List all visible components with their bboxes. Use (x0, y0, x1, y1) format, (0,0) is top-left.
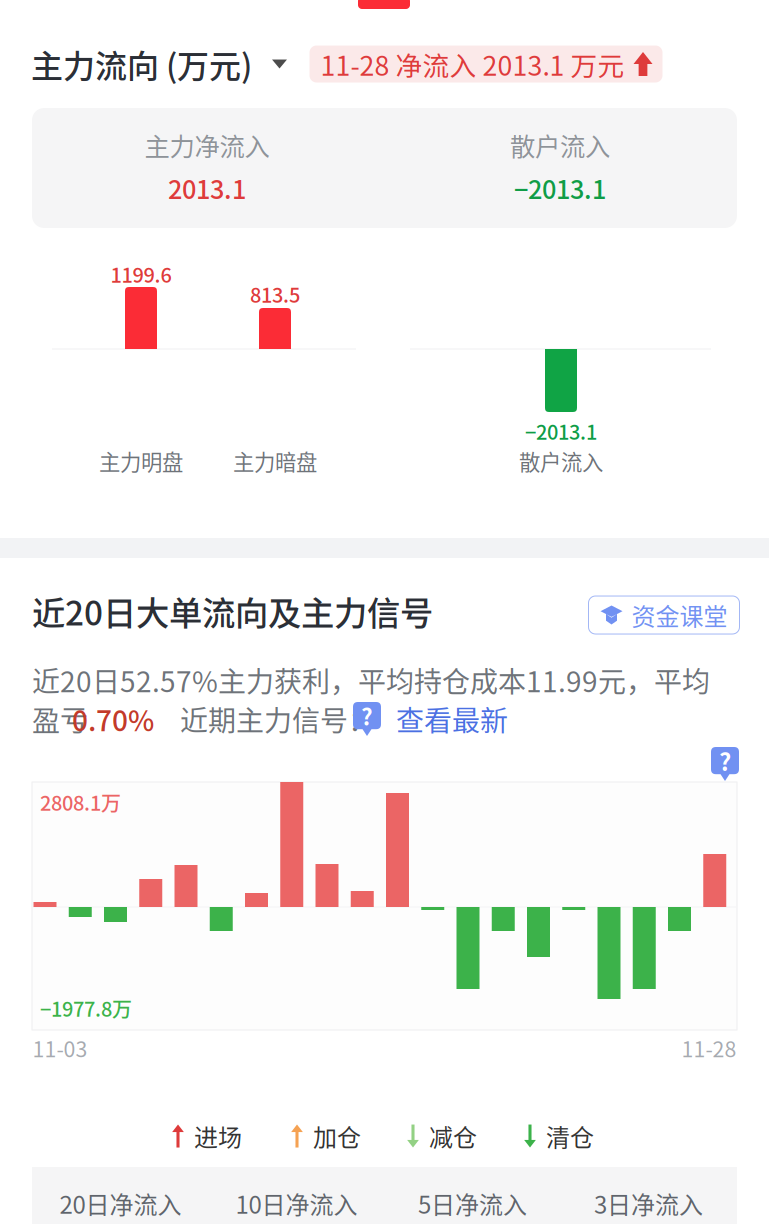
button[interactable]: 3日净流入 (560, 1167, 736, 1224)
staticText: 主力流向 (万元) (31, 41, 252, 87)
button[interactable]: 清仓 (523, 1117, 603, 1155)
staticText: 11-03 (32, 1033, 87, 1063)
staticText: −1977.8万 (40, 993, 132, 1022)
staticText: 减仓 (429, 1119, 477, 1153)
staticText: −2013.1 (514, 170, 606, 206)
staticText: 2808.1万 (40, 787, 121, 816)
staticText: 1199.6 (110, 259, 171, 288)
staticText: 近期主力信号： (180, 699, 376, 739)
staticText: −2013.1 (525, 416, 597, 445)
button[interactable]: 图表说明 (711, 747, 739, 781)
staticText: ? (719, 743, 731, 778)
staticText: 近20日大单流向及主力信号 (32, 587, 433, 635)
button[interactable]: 10日净流入 (208, 1167, 384, 1224)
staticText: 盈亏 (32, 699, 88, 739)
staticText: 散户流入 (510, 127, 610, 163)
staticText: 2013.1 (168, 170, 246, 206)
staticText: 清仓 (546, 1119, 594, 1153)
button[interactable]: 5日净流入 (384, 1167, 560, 1224)
button[interactable]: 资金课堂 (588, 596, 739, 634)
button[interactable]: 加仓 (290, 1117, 370, 1155)
staticText: 5日净流入 (418, 1186, 527, 1221)
staticText: 进场 (194, 1119, 242, 1153)
button[interactable]: 进场 (171, 1117, 251, 1155)
button[interactable]: 减仓 (406, 1117, 486, 1155)
staticText: 20日净流入 (59, 1186, 181, 1221)
staticText: 11-28 净流入 2013.1 万元 (320, 45, 624, 83)
staticText: 近20日52.57%主力获利，平均持仓成本11.99元，平均 (32, 660, 710, 700)
staticText: 11-28 (681, 1033, 736, 1063)
staticText: 813.5 (250, 279, 300, 308)
staticText: ? (361, 699, 373, 732)
staticText: 加仓 (313, 1119, 361, 1153)
staticText: 散户流入 (519, 446, 603, 476)
staticText: 主力净流入 (144, 127, 269, 163)
button[interactable]: 20日净流入 (32, 1167, 208, 1224)
button[interactable]: 主力流向 万元 切换周期 (23, 42, 297, 86)
staticText: 3日净流入 (594, 1186, 703, 1221)
button[interactable]: ? (353, 701, 547, 737)
staticText: 主力明盘 (99, 446, 183, 476)
staticText: 0.70% (72, 699, 154, 739)
staticText: 主力暗盘 (233, 446, 317, 476)
staticText: 查看最新 (396, 699, 508, 739)
staticText: 资金课堂 (631, 598, 727, 632)
button[interactable]: 11-28 净流入 2013.1 万元 (309, 45, 662, 82)
staticText: 10日净流入 (235, 1186, 357, 1221)
